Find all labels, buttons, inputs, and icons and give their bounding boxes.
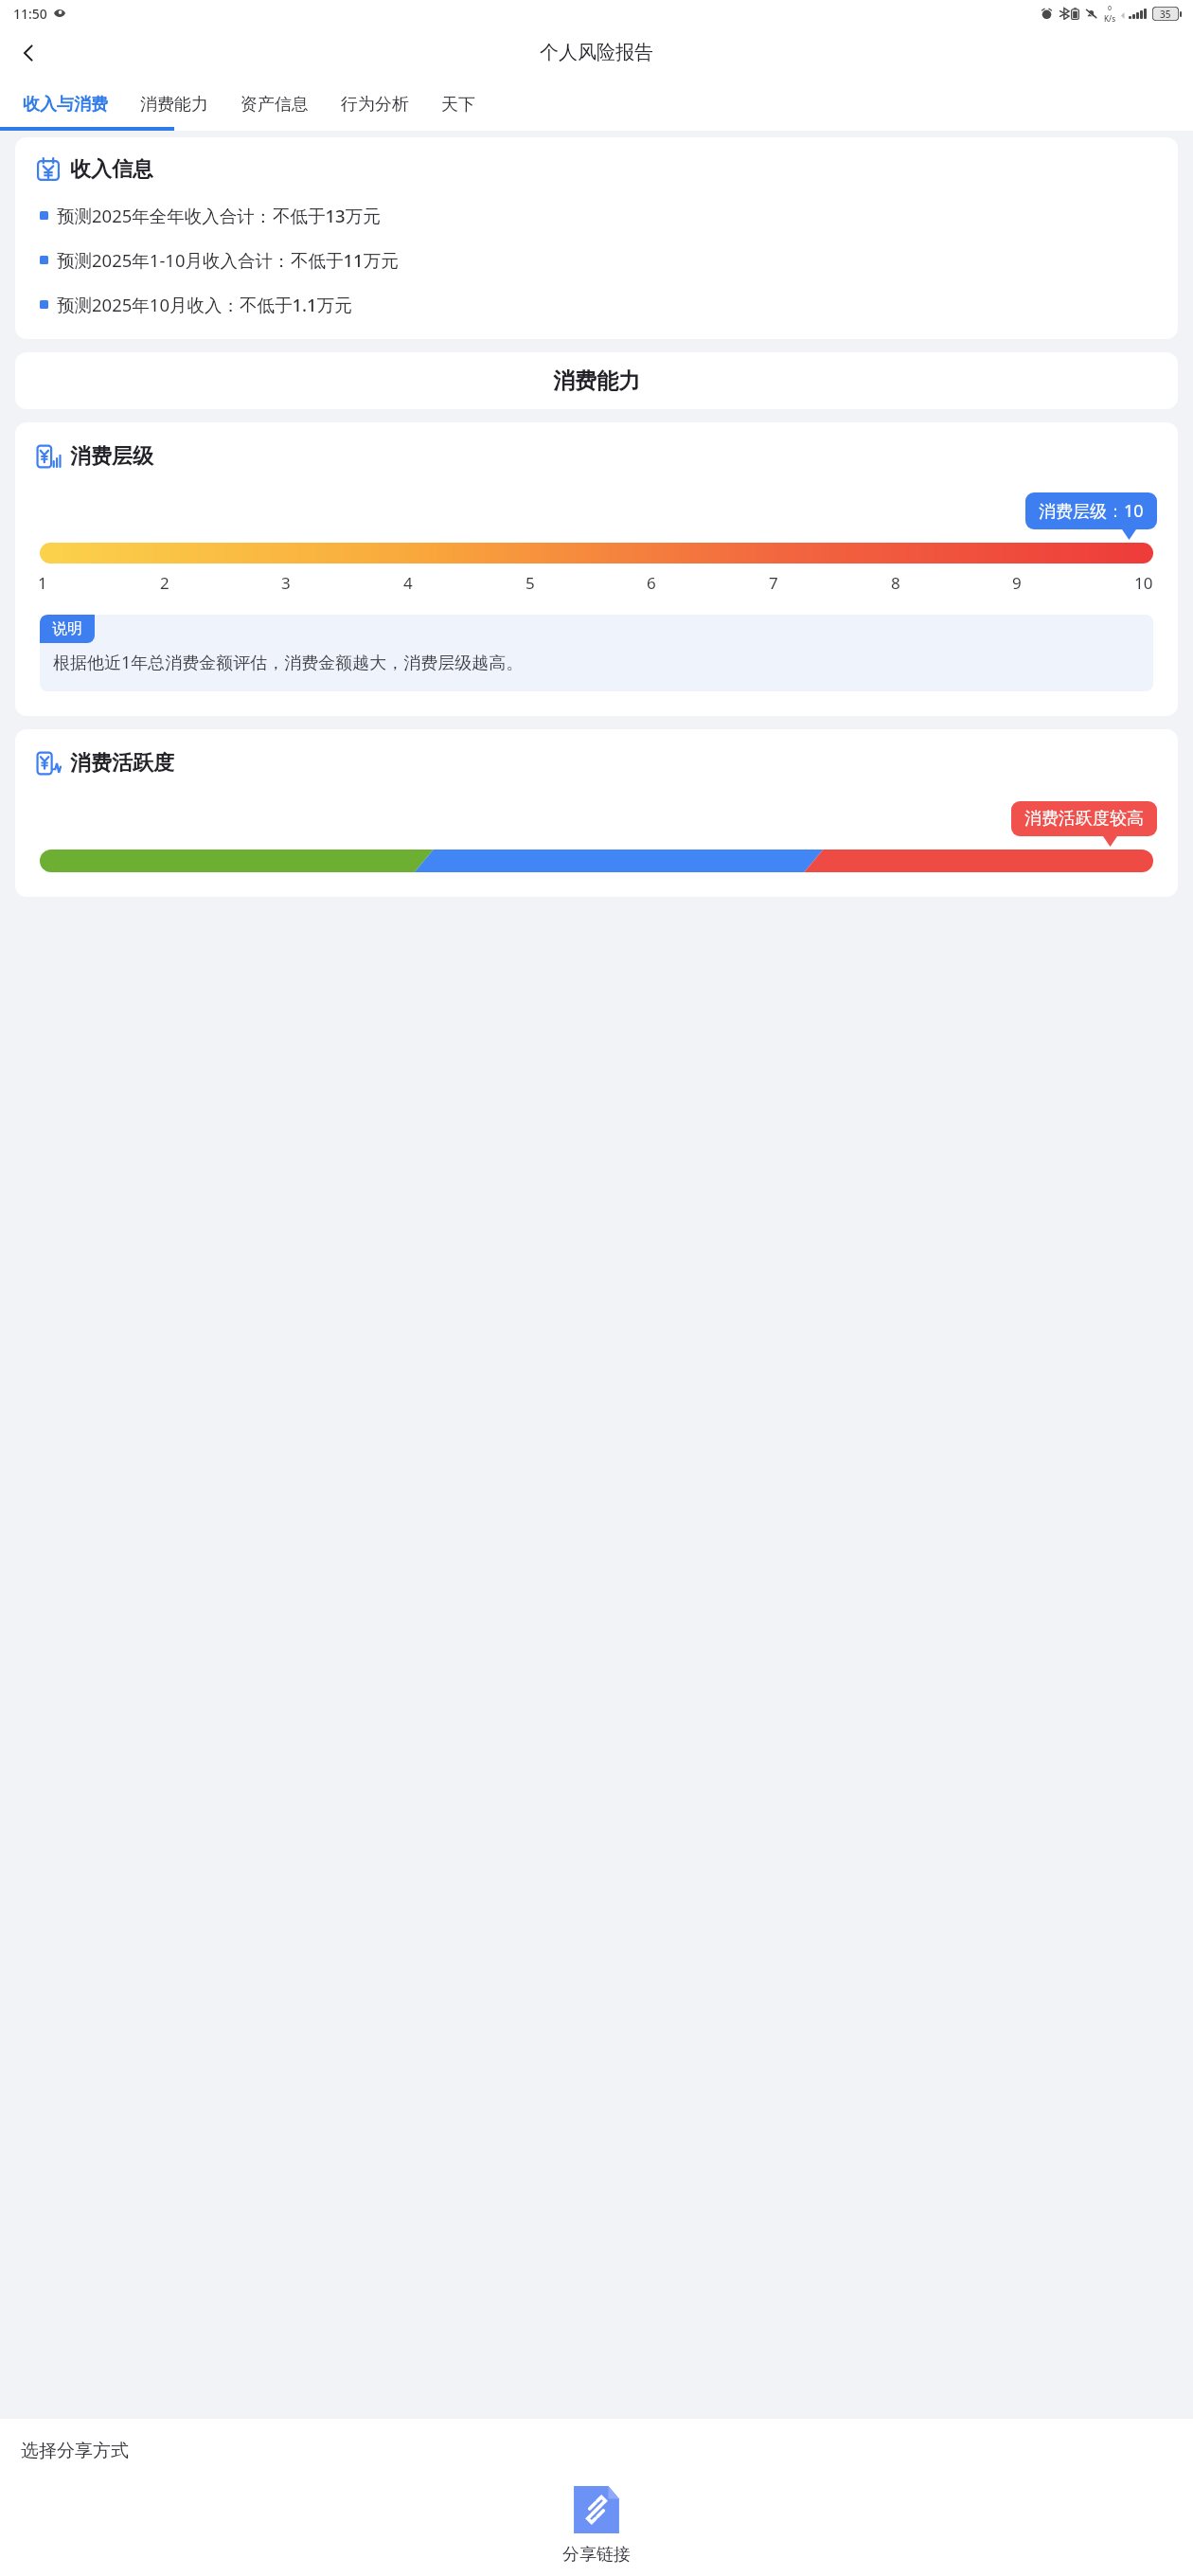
staticText: 选择分享方式	[21, 2440, 129, 2462]
staticText: 4	[403, 572, 424, 594]
staticText: 预测2025年1-10月收入合计：	[57, 248, 291, 272]
staticText: 不低于13万元	[273, 204, 381, 227]
button[interactable]: 收入与消费	[23, 79, 108, 131]
staticText: 2	[160, 572, 181, 594]
button[interactable]: 返回	[8, 32, 49, 74]
staticText: 11:50	[13, 5, 47, 23]
staticText: 8	[891, 572, 912, 594]
staticText: 6	[647, 572, 668, 594]
staticText: 天下	[441, 94, 475, 116]
staticText: 9	[1012, 572, 1033, 594]
staticText: 消费层级	[70, 443, 153, 470]
button[interactable]: 行为分析	[341, 79, 409, 131]
button[interactable]: 消费能力	[140, 79, 208, 131]
staticText: 消费活跃度较高	[1024, 808, 1144, 830]
staticText: 收入与消费	[23, 94, 108, 116]
staticText: 7	[769, 572, 790, 594]
staticText: 消费能力	[553, 367, 640, 395]
staticText: 资产信息	[240, 94, 309, 116]
staticText: 不低于11万元	[291, 248, 399, 272]
staticText: 收入信息	[70, 156, 153, 183]
staticText: 消费层级：10	[1039, 499, 1144, 523]
staticText: 1	[38, 572, 59, 594]
staticText: 35	[1160, 8, 1171, 21]
staticText: 预测2025年全年收入合计：	[57, 204, 273, 227]
button[interactable]: 资产信息	[240, 79, 309, 131]
staticText: 5	[525, 572, 546, 594]
staticText: 分享链接	[562, 2544, 631, 2566]
staticText: 消费能力	[140, 94, 208, 116]
staticText: 根据他近1年总消费金额评估，消费金额越大，消费层级越高。	[53, 651, 524, 674]
staticText: 行为分析	[341, 94, 409, 116]
staticText: 消费活跃度	[70, 750, 174, 777]
staticText: K/s	[1104, 13, 1116, 24]
staticText: 预测2025年10月收入：	[57, 293, 240, 316]
staticText: 0	[1108, 4, 1113, 13]
staticText: 10	[1134, 572, 1155, 594]
button[interactable]: 分享链接	[551, 2483, 642, 2567]
button[interactable]: 天下	[441, 79, 475, 131]
staticText: 说明	[52, 619, 82, 638]
staticText: 个人风险报告	[540, 41, 653, 64]
staticText: 不低于1.1万元	[240, 293, 352, 316]
staticText: 3	[281, 572, 302, 594]
